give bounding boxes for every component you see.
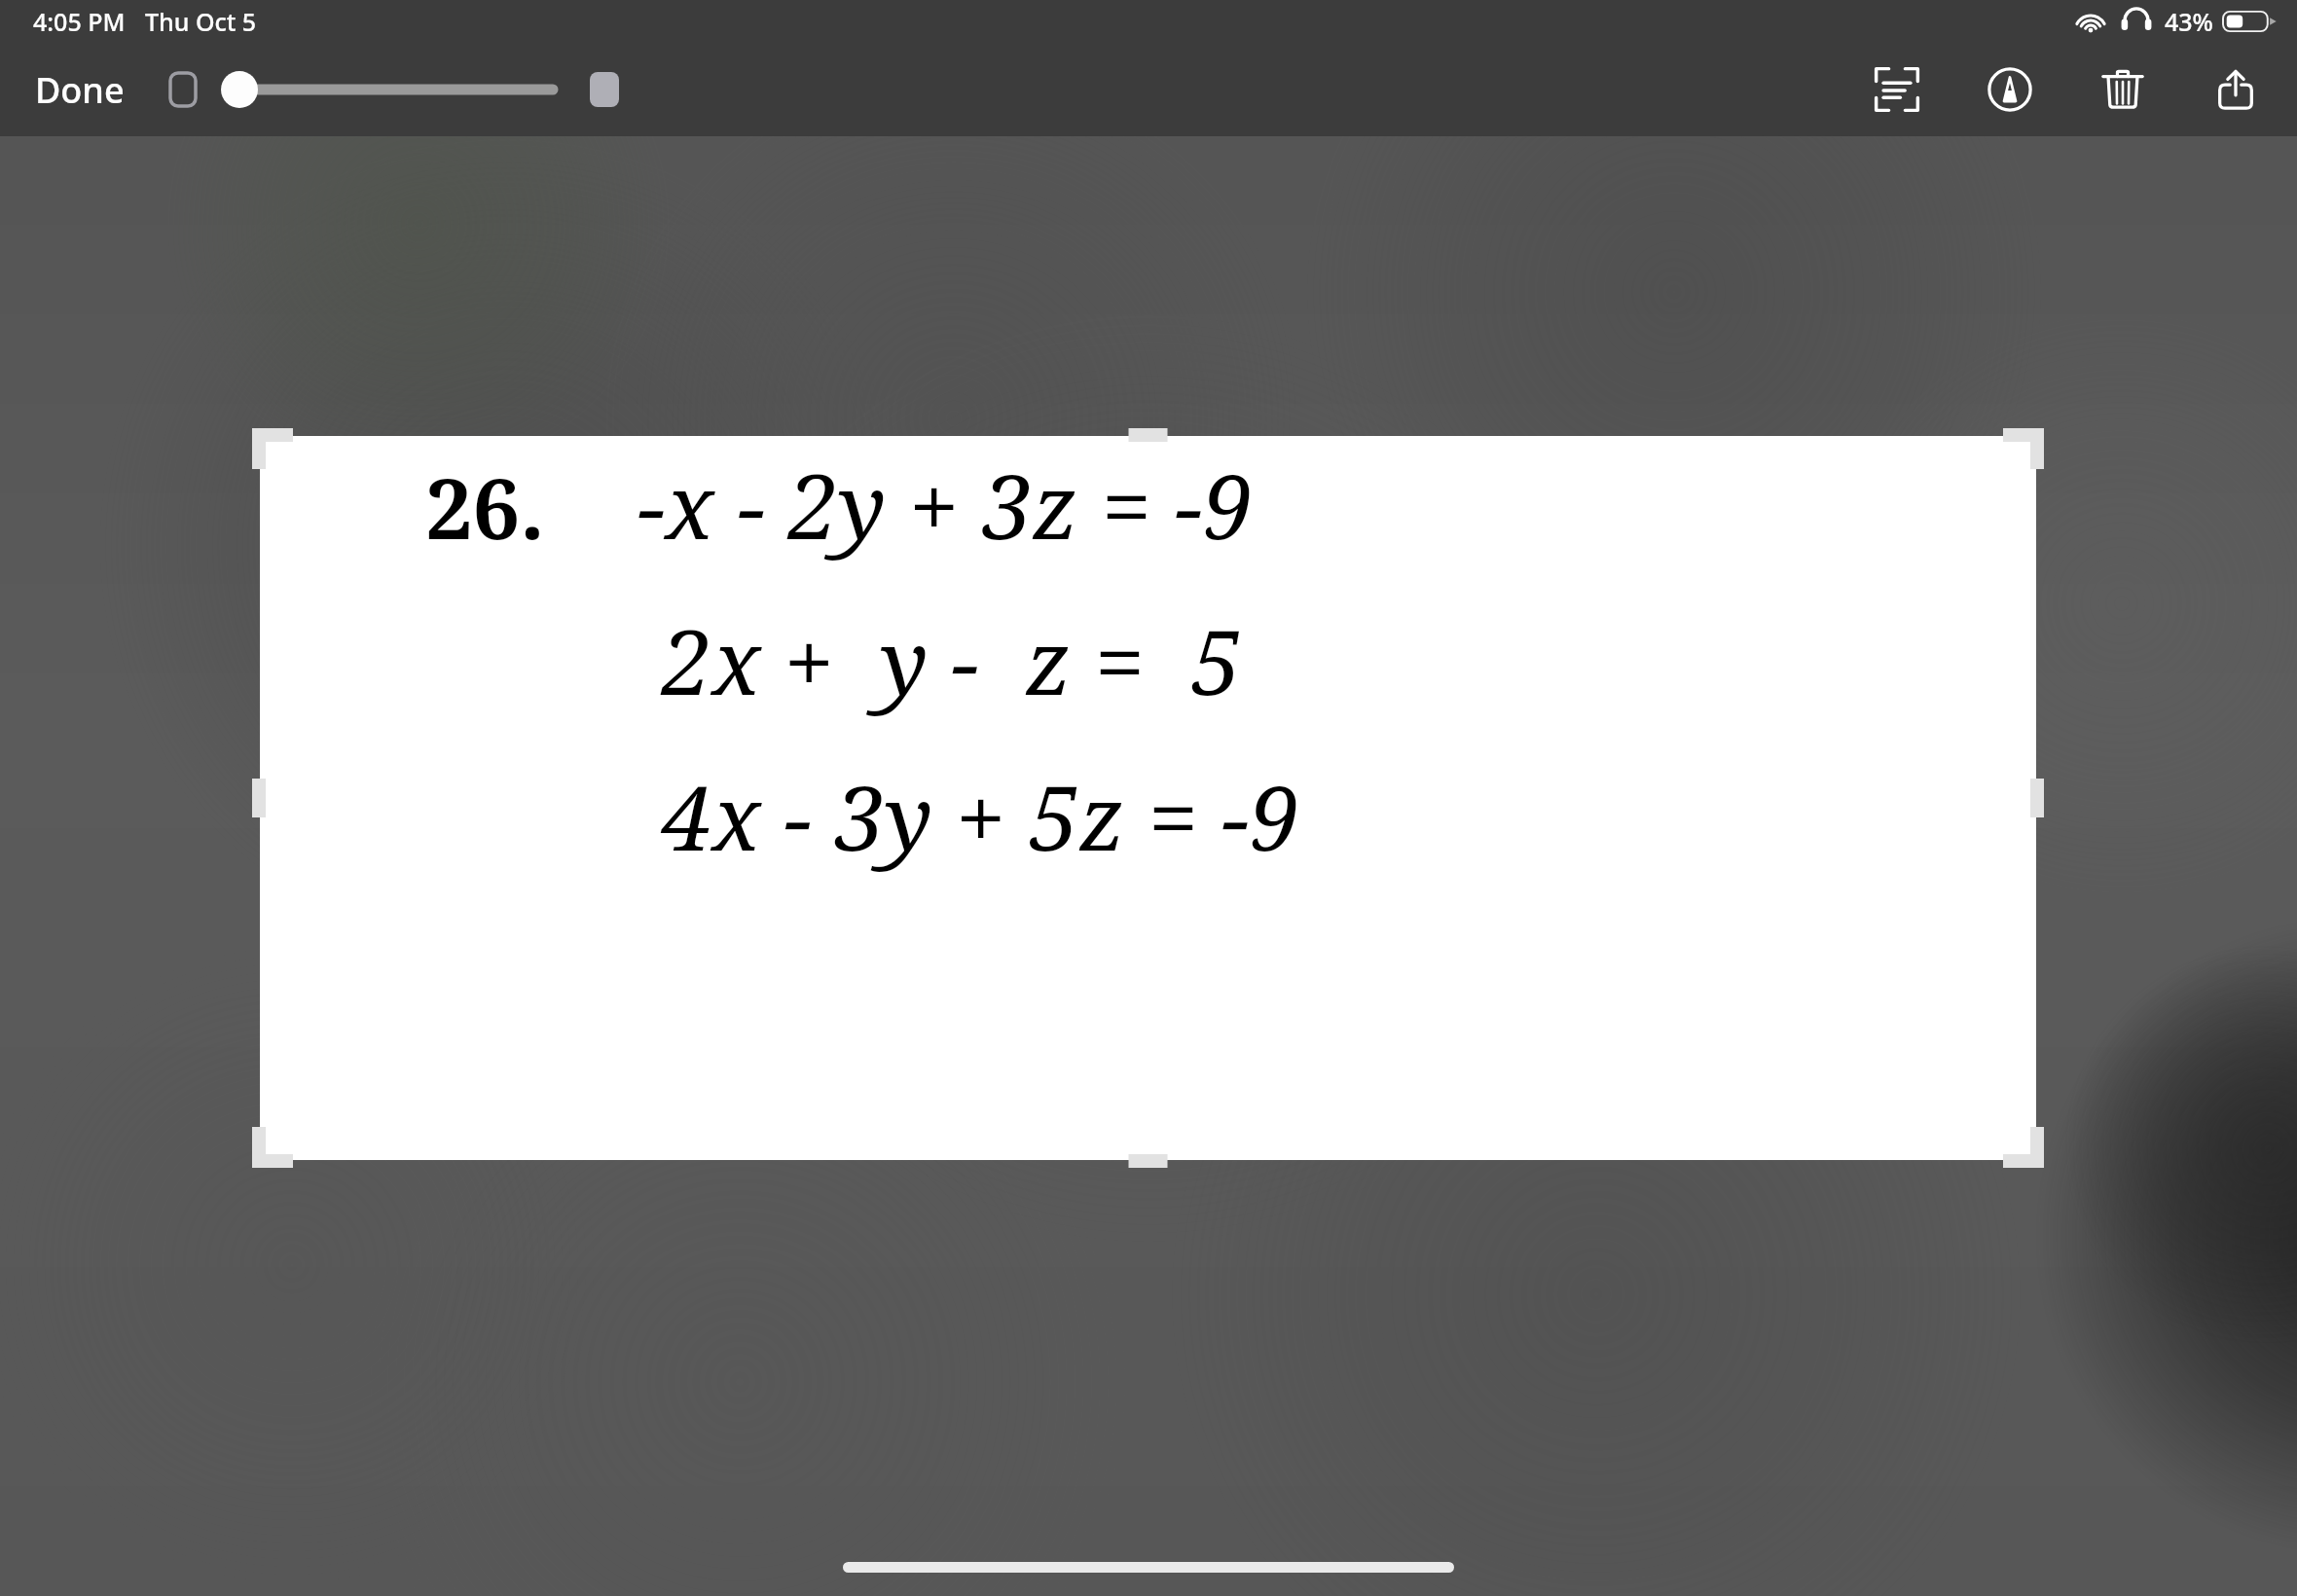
staticText: 26. xyxy=(425,450,545,563)
staticText: 4x − 3y + 5z = −9 xyxy=(662,755,1299,877)
staticText: 43% xyxy=(2165,5,2213,38)
button[interactable]: Live Text xyxy=(1861,54,1933,126)
staticText: Done xyxy=(35,66,125,114)
staticText: Thu Oct 5 xyxy=(145,5,257,38)
button[interactable]: Markup xyxy=(1974,54,2046,126)
button[interactable]: Page scrubber xyxy=(156,43,642,136)
staticText: 4:05 PM xyxy=(33,5,126,38)
button[interactable]: Delete xyxy=(2087,54,2159,126)
button[interactable]: Share xyxy=(2200,54,2272,126)
button[interactable]: Done xyxy=(14,56,146,124)
staticText: −x − 2y + 3z = −9 xyxy=(638,444,1254,565)
staticText: 2x + y − z = 5 xyxy=(662,599,1242,721)
